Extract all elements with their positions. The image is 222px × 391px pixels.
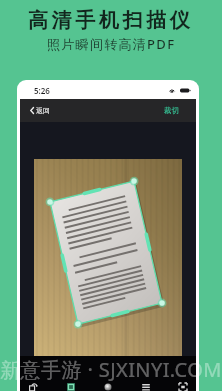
button[interactable]: Rotate [23,377,43,391]
staticText: 高清手机扫描仪 [28,8,194,33]
button[interactable]: Pages [136,377,156,391]
staticText: 返回 [36,106,50,115]
button[interactable]: 返回 [20,102,60,119]
button[interactable]: Filter [61,377,81,391]
staticText: 5:26 [34,85,50,96]
button[interactable]: Crop [173,377,193,391]
staticText: 照片瞬间转高清PDF [47,35,176,53]
staticText: 裁切 [164,106,179,115]
button[interactable]: 裁切 [156,102,196,119]
staticText: 新意手游 · SJXINYI.COM [0,356,222,383]
button[interactable]: Brightness [98,377,118,391]
